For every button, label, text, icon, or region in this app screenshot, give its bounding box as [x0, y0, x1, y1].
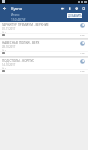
staticText: 28.10.2017 [2, 45, 16, 49]
button[interactable]: Sync [80, 41, 85, 46]
button[interactable]: НАВЕСНЫЕ ПОЛКИ - ВЕРХ [0, 40, 88, 56]
button[interactable]: More [80, 4, 87, 12]
staticText: 14.10.2017 [2, 63, 16, 67]
staticText: 1 шт [80, 52, 85, 55]
button[interactable]: Camera [59, 4, 66, 12]
staticText: № 3 [2, 31, 6, 34]
staticText: ГАРНИТУР ПРЕМИУМ - ВЕРХНИЕ [2, 23, 49, 27]
staticText: № 3 [2, 67, 6, 70]
button[interactable]: Back [0, 4, 9, 12]
staticText: 01.11.2017 [2, 27, 16, 31]
button[interactable]: ДОБАВИТЬ [67, 13, 82, 18]
staticText: ПОД СТОЛЫ - КОРПУС [2, 59, 35, 63]
button[interactable]: Sync [80, 59, 85, 64]
staticText: № 3 [2, 49, 6, 52]
staticText: 2 шт [80, 34, 85, 37]
staticText: Кухня [11, 6, 22, 11]
staticText: ДОБАВИТЬ [68, 14, 82, 18]
button[interactable]: Note [66, 4, 73, 12]
staticText: Итого: [11, 13, 20, 17]
button[interactable]: ГАРНИТУР ПРЕМИУМ - ВЕРХНИЕ [0, 22, 88, 38]
button[interactable]: History [73, 4, 80, 12]
staticText: НАВЕСНЫЕ ПОЛКИ - ВЕРХ [2, 41, 40, 45]
staticText: 4 шт [80, 70, 85, 73]
staticText: 150 487 ₽ [11, 18, 26, 22]
button[interactable]: Sync [80, 23, 85, 28]
button[interactable]: ПОД СТОЛЫ - КОРПУС [0, 58, 88, 74]
